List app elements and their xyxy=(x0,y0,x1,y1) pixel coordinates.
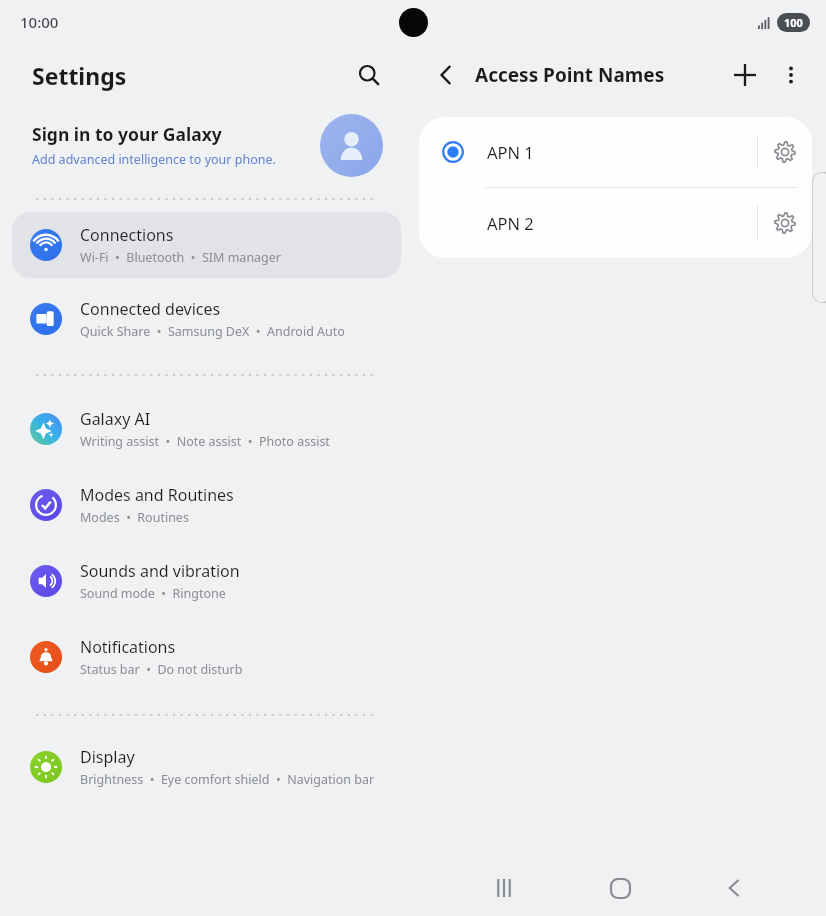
button[interactable]: Back xyxy=(711,864,759,912)
button[interactable]: Edit APN 1 xyxy=(758,125,812,179)
button[interactable]: Recents xyxy=(480,864,528,912)
staticText: Sounds and vibration xyxy=(80,560,240,582)
staticText: Add advanced intelligence to your phone. xyxy=(32,151,276,168)
button[interactable]: Connections xyxy=(12,212,401,278)
button[interactable]: Sign in to your Galaxy xyxy=(0,106,413,184)
staticText: Quick Share • Samsung DeX • Android Auto xyxy=(80,323,345,340)
staticText: Settings xyxy=(32,60,127,91)
staticText: Writing assist • Note assist • Photo ass… xyxy=(80,433,330,450)
staticText: Galaxy AI xyxy=(80,408,151,430)
button[interactable]: Connected devices xyxy=(12,286,401,352)
staticText: Notifications xyxy=(80,636,176,658)
button[interactable]: Display xyxy=(12,734,401,800)
button[interactable]: Modes and Routines xyxy=(12,472,401,538)
staticText: Wi-Fi • Bluetooth • SIM manager xyxy=(80,249,282,266)
staticText: Access Point Names xyxy=(475,62,665,88)
button[interactable]: More options xyxy=(770,54,812,96)
staticText: Connections xyxy=(80,224,174,246)
staticText: 100 xyxy=(784,15,803,30)
staticText: 10:00 xyxy=(20,12,59,32)
staticText: Status bar • Do not disturb xyxy=(80,661,243,678)
button[interactable]: Notifications xyxy=(12,624,401,690)
button[interactable]: Search xyxy=(349,55,389,95)
staticText: APN 2 xyxy=(487,212,534,234)
button[interactable]: Galaxy AI xyxy=(12,396,401,462)
staticText: Modes and Routines xyxy=(80,484,234,506)
button[interactable]: Add xyxy=(724,54,766,96)
staticText: Sound mode • Ringtone xyxy=(80,585,226,602)
button[interactable]: Edge panel xyxy=(812,172,826,303)
button[interactable]: APN 2 xyxy=(419,188,812,258)
button[interactable]: Home xyxy=(596,864,644,912)
button[interactable]: Sounds and vibration xyxy=(12,548,401,614)
button[interactable]: APN 1 xyxy=(419,117,812,187)
staticText: APN 1 xyxy=(487,141,534,163)
staticText: Sign in to your Galaxy xyxy=(32,122,222,146)
staticText: Modes • Routines xyxy=(80,509,189,526)
staticText: Display xyxy=(80,746,135,768)
staticText: Brightness • Eye comfort shield • Naviga… xyxy=(80,771,375,788)
button[interactable]: Back xyxy=(427,55,467,95)
button[interactable]: Edit APN 2 xyxy=(758,196,812,250)
staticText: Connected devices xyxy=(80,298,221,320)
